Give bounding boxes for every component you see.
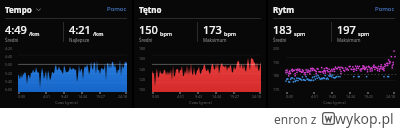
- button[interactable]: 197: [337, 22, 395, 43]
- staticText: enron z: [274, 111, 317, 127]
- staticText: /km: [29, 30, 40, 37]
- staticText: Tętno: [139, 4, 162, 15]
- staticText: Pomoc: [375, 5, 395, 13]
- staticText: 4:51: [177, 94, 184, 99]
- staticText: 100: [139, 87, 146, 92]
- staticText: 4:51: [43, 94, 50, 99]
- staticText: 150: [139, 22, 158, 37]
- staticText: 19:27: [230, 94, 239, 99]
- staticText: 197: [337, 22, 356, 37]
- button[interactable]: 173: [203, 22, 261, 43]
- staticText: 19:25: [364, 94, 373, 99]
- staticText: 180: [139, 46, 146, 51]
- other: Expand: [35, 6, 42, 13]
- staticText: 5:20: [5, 71, 12, 76]
- staticText: 190: [273, 60, 280, 65]
- staticText: 9:43: [195, 94, 202, 99]
- staticText: 173: [203, 22, 222, 37]
- staticText: 0:00: [286, 94, 293, 99]
- staticText: Maksimum: [337, 37, 361, 43]
- staticText: Średni: [273, 37, 287, 43]
- staticText: 170: [273, 87, 280, 92]
- staticText: 14:34: [346, 94, 355, 99]
- staticText: 4:51: [311, 94, 318, 99]
- staticText: bpm: [224, 30, 237, 37]
- staticText: 9:43: [329, 94, 336, 99]
- staticText: Średni: [139, 37, 153, 43]
- staticText: 0:00: [152, 94, 159, 99]
- button[interactable]: Pomoc: [107, 5, 127, 13]
- staticText: 180: [273, 73, 280, 78]
- button[interactable]: Pomoc: [375, 5, 395, 13]
- staticText: bpm: [160, 30, 173, 37]
- staticText: Tempo: [5, 4, 32, 15]
- staticText: spm: [294, 30, 306, 37]
- button[interactable]: 150: [139, 22, 197, 43]
- button[interactable]: Tętno: [139, 4, 162, 15]
- staticText: 0:00: [18, 94, 25, 99]
- staticText: 5:00: [5, 62, 12, 67]
- staticText: 24:18: [386, 94, 395, 99]
- staticText: 4:49: [5, 22, 27, 37]
- button[interactable]: 4:49: [5, 22, 63, 43]
- staticText: Czas (g:m:s): [55, 100, 78, 105]
- staticText: 160: [139, 56, 146, 61]
- staticText: 6:00: [5, 87, 12, 92]
- staticText: 14:34: [212, 94, 221, 99]
- staticText: Pomoc: [107, 5, 127, 13]
- staticText: 4:20: [5, 46, 12, 51]
- button[interactable]: 4:21: [69, 22, 127, 43]
- staticText: 120: [139, 77, 146, 82]
- staticText: /km: [93, 30, 104, 37]
- button[interactable]: Tempo: [5, 4, 42, 15]
- staticText: 4:40: [5, 54, 12, 59]
- staticText: 19:27: [96, 94, 105, 99]
- staticText: Czas (g:m:s): [189, 100, 212, 105]
- staticText: 24:18: [118, 94, 127, 99]
- staticText: spm: [358, 30, 370, 37]
- staticText: Czas (g:m:s): [323, 100, 346, 105]
- button[interactable]: 183: [273, 22, 331, 43]
- staticText: 9:43: [61, 94, 68, 99]
- staticText: Rytm: [273, 4, 295, 15]
- staticText: Średni: [5, 37, 19, 43]
- staticText: 4:21: [69, 22, 91, 37]
- staticText: 183: [273, 22, 292, 37]
- button[interactable]: Rytm: [273, 4, 295, 15]
- staticText: Najlepsze: [69, 37, 90, 43]
- staticText: 140: [139, 67, 146, 72]
- staticText: 200: [273, 46, 280, 51]
- staticText: 5:40: [5, 79, 12, 84]
- staticText: 14:34: [78, 94, 87, 99]
- staticText: wykop.pl: [335, 109, 394, 128]
- staticText: Maksimum: [203, 37, 227, 43]
- staticText: 24:18: [252, 94, 261, 99]
